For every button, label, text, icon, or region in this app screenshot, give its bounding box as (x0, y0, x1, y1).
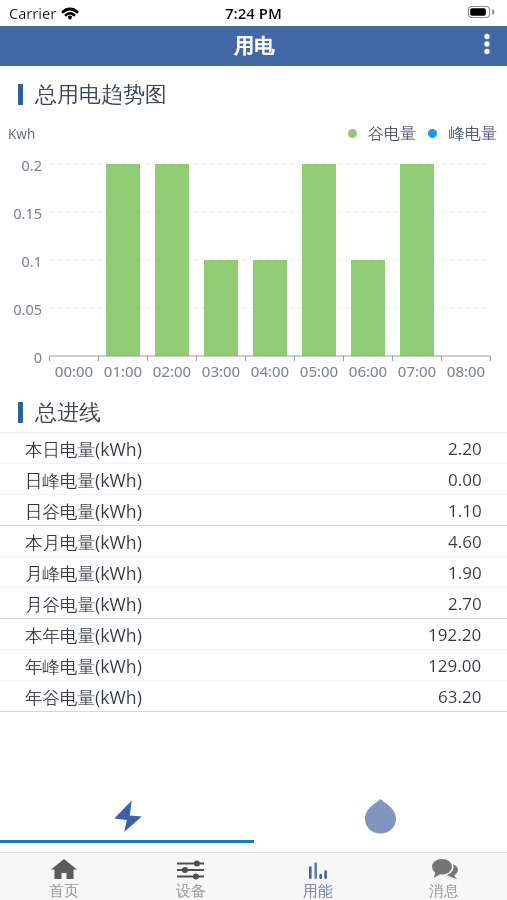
button[interactable]: 设备 (127, 853, 254, 900)
staticText: 2.70 (448, 592, 482, 615)
staticText: 06:00 (342, 361, 394, 381)
staticText: 4.60 (448, 530, 482, 553)
staticText: 年峰电量(kWh) (25, 654, 142, 678)
button[interactable]: 用能 (254, 853, 381, 900)
staticText: 月峰电量(kWh) (25, 561, 142, 585)
button[interactable]: 本日电量(kWh) (0, 433, 507, 464)
button[interactable]: 本月电量(kWh) (0, 526, 507, 557)
button[interactable]: 日谷电量(kWh) (0, 495, 507, 526)
staticText: 本年电量(kWh) (25, 623, 142, 647)
button[interactable] (253, 792, 507, 840)
staticText: 0.05 (0, 299, 42, 319)
staticText: 2.20 (448, 437, 482, 460)
staticText: 63.20 (438, 685, 482, 708)
staticText: 1.10 (448, 499, 482, 522)
staticText: 用电 (234, 34, 274, 59)
staticText: 用能 (303, 882, 333, 900)
staticText: 首页 (49, 882, 79, 900)
staticText: 07:00 (391, 361, 443, 381)
staticText: 本日电量(kWh) (25, 437, 142, 461)
button[interactable]: 首页 (0, 853, 127, 900)
staticText: 0.1 (0, 251, 42, 271)
staticText: 01:00 (97, 361, 149, 381)
staticText: 0 (0, 347, 42, 367)
staticText: 总进线 (35, 399, 101, 425)
staticText: 总用电趋势图 (35, 81, 167, 107)
staticText: 08:00 (440, 361, 492, 381)
staticText: 129.00 (428, 654, 482, 677)
staticText: 月谷电量(kWh) (25, 592, 142, 616)
button[interactable] (467, 26, 507, 66)
staticText: 本月电量(kWh) (25, 530, 142, 554)
staticText: 0.2 (0, 155, 42, 175)
staticText: 1.90 (448, 561, 482, 584)
staticText: 192.20 (428, 623, 482, 646)
staticText: 设备 (176, 882, 206, 900)
staticText: 7:24 PM (0, 3, 507, 23)
button[interactable]: 日峰电量(kWh) (0, 464, 507, 495)
staticText: 03:00 (195, 361, 247, 381)
staticText: 峰电量 (449, 124, 497, 144)
button[interactable]: 消息 (381, 853, 507, 900)
staticText: 02:00 (146, 361, 198, 381)
staticText: Carrier (9, 3, 57, 23)
staticText: 0.15 (0, 203, 42, 223)
staticText: 年谷电量(kWh) (25, 685, 142, 709)
button[interactable]: 年峰电量(kWh) (0, 650, 507, 681)
button[interactable]: 本年电量(kWh) (0, 619, 507, 650)
button[interactable]: 月峰电量(kWh) (0, 557, 507, 588)
staticText: 04:00 (244, 361, 296, 381)
staticText: 消息 (429, 882, 459, 900)
staticText: Kwh (8, 125, 36, 143)
button[interactable] (0, 792, 253, 840)
staticText: 00:00 (48, 361, 100, 381)
staticText: 日峰电量(kWh) (25, 468, 142, 492)
staticText: 日谷电量(kWh) (25, 499, 142, 523)
staticText: 0.00 (448, 468, 482, 491)
staticText: 05:00 (293, 361, 345, 381)
button[interactable]: 年谷电量(kWh) (0, 681, 507, 712)
button[interactable]: 月谷电量(kWh) (0, 588, 507, 619)
staticText: 谷电量 (368, 124, 416, 144)
